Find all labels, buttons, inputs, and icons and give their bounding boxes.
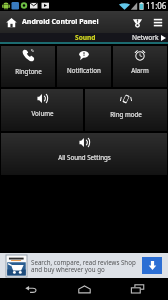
button[interactable]: Install (142, 257, 162, 274)
staticText: Ring mode (110, 110, 142, 118)
button[interactable]: Network (132, 33, 168, 42)
button[interactable]: All Sound Settings (1, 133, 167, 175)
staticText: Sound (75, 33, 96, 42)
button[interactable]: Recent apps (115, 278, 159, 300)
button[interactable]: Sound (21, 33, 149, 42)
staticText: Ringtone (15, 67, 42, 75)
button[interactable]: Ring mode (85, 89, 167, 131)
staticText: Alarm (131, 66, 149, 74)
staticText: Search, compare, read reviews Shop and b… (31, 258, 136, 274)
button[interactable]: Alarm (113, 46, 167, 87)
staticText: All Sound Settings (58, 153, 111, 161)
staticText: Network (132, 33, 159, 42)
button[interactable]: Search, compare, read reviews Shop and b… (0, 253, 168, 278)
staticText: Android Control Panel (22, 17, 99, 27)
button[interactable]: Ringtone (1, 46, 55, 87)
staticText: 11:06 (146, 0, 167, 11)
button[interactable]: Menu (148, 11, 168, 33)
button[interactable]: Home (62, 278, 106, 300)
staticText: Notification (67, 66, 101, 74)
staticText: Volume (31, 109, 54, 117)
button[interactable]: Volume (1, 89, 83, 131)
button[interactable]: Home (0, 11, 22, 33)
button[interactable]: Notification (57, 46, 111, 87)
button[interactable]: Back (9, 278, 53, 300)
button[interactable]: Rate app (126, 11, 148, 33)
